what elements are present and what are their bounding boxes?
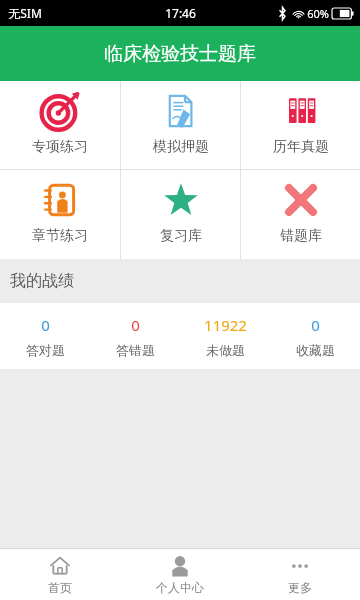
staticText: 模拟押题	[153, 138, 209, 156]
staticText: 0	[311, 315, 320, 335]
staticText: 0	[41, 315, 50, 335]
button[interactable]: 11922	[180, 303, 270, 369]
button[interactable]: 0	[0, 303, 90, 369]
staticText: 专项练习	[32, 138, 88, 156]
staticText: 答错题	[116, 342, 155, 358]
button[interactable]: 专项练习	[0, 81, 120, 169]
button[interactable]: 首页	[0, 549, 120, 600]
staticText: 答对题	[26, 342, 65, 358]
button[interactable]: 章节练习	[0, 170, 120, 259]
staticText: 更多	[288, 580, 312, 595]
button[interactable]: 0	[90, 303, 180, 369]
staticText: 17:46	[165, 5, 196, 21]
button[interactable]: 0	[270, 303, 360, 369]
staticText: 收藏题	[296, 342, 335, 358]
staticText: 复习库	[160, 227, 202, 245]
button[interactable]: 模拟押题	[121, 81, 240, 169]
staticText: 无SIM	[8, 5, 42, 21]
staticText: 历年真题	[273, 138, 329, 156]
staticText: 0	[131, 315, 140, 335]
staticText: 个人中心	[156, 580, 204, 595]
button[interactable]: 历年真题	[241, 81, 360, 169]
staticText: 我的战绩	[10, 271, 74, 291]
button[interactable]: 更多	[240, 549, 360, 600]
staticText: 临床检验技士题库	[104, 42, 256, 66]
staticText: 章节练习	[32, 227, 88, 245]
button[interactable]: 复习库	[121, 170, 240, 259]
staticText: 未做题	[206, 342, 245, 358]
staticText: 错题库	[280, 227, 322, 245]
staticText: 11922	[204, 315, 247, 335]
button[interactable]: 错题库	[241, 170, 360, 259]
staticText: 首页	[48, 580, 72, 595]
button[interactable]: 个人中心	[120, 549, 240, 600]
staticText: 60%	[307, 6, 329, 21]
